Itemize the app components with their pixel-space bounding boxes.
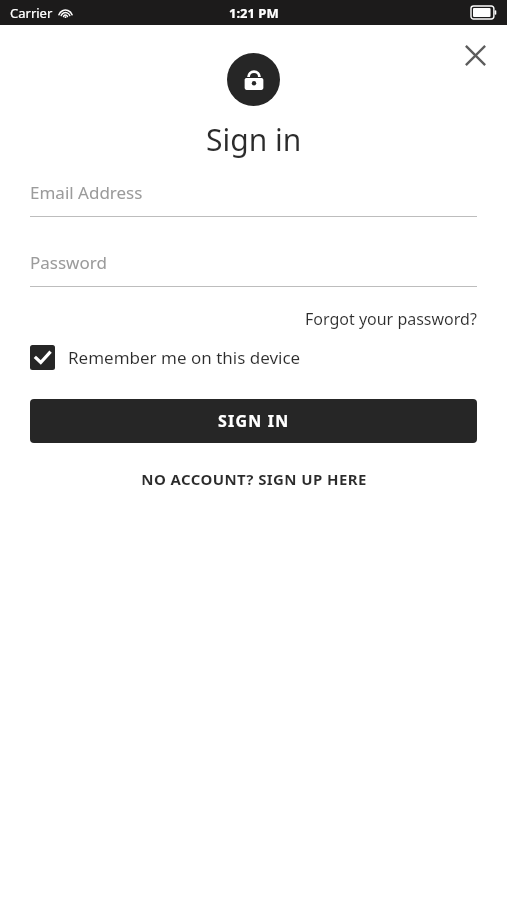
staticText: Email Address xyxy=(30,181,143,204)
button[interactable]: Forgot your password? xyxy=(305,306,477,332)
button[interactable]: Password xyxy=(30,251,477,287)
button[interactable]: SIGN IN xyxy=(30,399,477,443)
staticText: Sign in xyxy=(206,119,302,160)
staticText: Password xyxy=(30,251,107,274)
staticText: Forgot your password? xyxy=(305,308,477,330)
button[interactable]: Close xyxy=(451,31,499,79)
button[interactable]: Email Address xyxy=(30,181,477,217)
staticText: SIGN IN xyxy=(218,410,290,432)
staticText: Carrier xyxy=(10,4,53,22)
staticText: Remember me on this device xyxy=(68,346,301,369)
button[interactable]: NO ACCOUNT? SIGN UP HERE xyxy=(30,463,477,495)
button[interactable]: Remember me on this device xyxy=(30,345,477,370)
staticText: 1:21 PM xyxy=(229,4,279,22)
staticText: NO ACCOUNT? SIGN UP HERE xyxy=(141,469,367,489)
